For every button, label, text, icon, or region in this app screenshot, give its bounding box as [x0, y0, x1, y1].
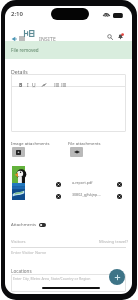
button[interactable]: Menu: [16, 33, 27, 44]
button[interactable]: Attachments: [11, 222, 46, 228]
staticText: Locations: [11, 268, 32, 274]
staticText: INSITE: [39, 36, 56, 43]
button[interactable]: Remove attachment: [116, 181, 123, 188]
button[interactable]: Back: [8, 33, 19, 44]
staticText: Attachments: [11, 222, 37, 228]
button[interactable]: Upload file: [70, 147, 83, 157]
staticText: U: [32, 82, 36, 88]
button[interactable]: Remove attachment: [55, 181, 62, 188]
button[interactable]: List: [53, 82, 59, 88]
staticText: Enter City, Metro Area, State/Country or…: [13, 276, 91, 281]
button[interactable]: Notifications: [115, 31, 126, 42]
staticText: 30802_gjfskjnp-...: [72, 192, 102, 197]
button[interactable]: Enter City, Metro Area, State/Country or…: [11, 274, 126, 292]
staticText: I: [27, 82, 29, 88]
staticText: Visitors: [11, 239, 26, 245]
button[interactable]: Search: [105, 32, 115, 42]
staticText: 2:10: [11, 10, 23, 18]
button[interactable]: Upload image: [12, 147, 25, 157]
button[interactable]: Add: [109, 269, 125, 285]
staticText: Missing travel?: [99, 239, 129, 245]
button[interactable]: Remove attachment: [55, 193, 62, 200]
staticText: File attachments: [68, 141, 101, 147]
staticText: Image attachments: [11, 141, 50, 147]
button[interactable]: List: [60, 82, 66, 88]
staticText: Enter Visitor Name: [11, 250, 47, 255]
staticText: a-report.pdf: [72, 180, 93, 185]
staticText: File removed: [11, 47, 39, 53]
staticText: B: [19, 82, 23, 88]
button[interactable]: U: [31, 82, 37, 88]
staticText: Details: [11, 68, 28, 75]
button[interactable]: B: [18, 82, 24, 88]
button[interactable]: I: [25, 82, 31, 88]
button[interactable]: Insert link: [41, 82, 47, 88]
button[interactable]: Remove attachment: [116, 193, 123, 200]
